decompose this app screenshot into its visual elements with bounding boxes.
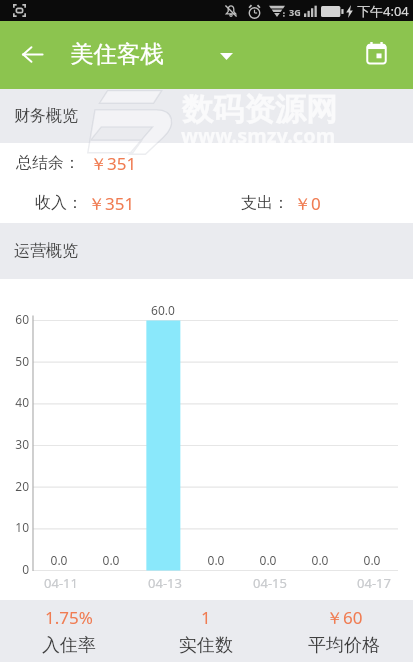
staticText: 60 <box>0 311 29 327</box>
staticText: ￥60 <box>326 606 363 629</box>
button[interactable]: ￥60 <box>275 606 413 657</box>
button[interactable]: Calendar <box>350 27 402 79</box>
staticText: 总结余： <box>16 153 80 173</box>
staticText: 04-15 <box>240 574 300 592</box>
staticText: 数码资源网 <box>182 90 337 129</box>
staticText: 0.0 <box>348 552 396 568</box>
staticText: 支出： <box>241 193 289 213</box>
staticText: 0.0 <box>244 552 292 568</box>
staticText: 1 <box>201 606 211 629</box>
staticText: 运营概览 <box>14 241 78 261</box>
staticText: 04-13 <box>135 574 195 592</box>
staticText: 20 <box>0 478 29 494</box>
staticText: 平均价格 <box>308 634 380 657</box>
staticText: 收入： <box>35 193 83 213</box>
staticText: 美住客栈 <box>70 39 164 69</box>
staticText: 0.0 <box>35 552 83 568</box>
button[interactable]: 收入： <box>0 183 413 223</box>
staticText: 财务概览 <box>14 106 78 126</box>
staticText: 10 <box>0 519 29 535</box>
staticText: 实住数 <box>179 634 233 657</box>
staticText: ￥351 <box>90 152 137 175</box>
staticText: 50 <box>0 353 29 369</box>
staticText: 0.0 <box>192 552 240 568</box>
staticText: ￥351 <box>88 192 135 215</box>
button[interactable]: 总结余： <box>0 143 413 183</box>
staticText: 0 <box>0 561 29 577</box>
button[interactable]: 1 <box>137 606 275 657</box>
staticText: 1.75% <box>45 606 93 629</box>
staticText: www.smzy.com <box>181 122 336 149</box>
staticText: 30 <box>0 436 29 452</box>
staticText: 3G <box>289 6 301 18</box>
button[interactable]: 美住客栈 <box>70 21 233 89</box>
button[interactable]: 1.75% <box>0 606 137 657</box>
staticText: 入住率 <box>42 634 96 657</box>
staticText: 0.0 <box>87 552 135 568</box>
staticText: 下午4:04 <box>357 2 409 20</box>
staticText: 04-11 <box>31 574 91 592</box>
staticText: 40 <box>0 394 29 410</box>
staticText: 0.0 <box>296 552 344 568</box>
staticText: 04-17 <box>344 574 404 592</box>
staticText: 60.0 <box>139 302 187 318</box>
button[interactable]: Back <box>6 28 58 80</box>
staticText: ￥0 <box>294 192 321 215</box>
